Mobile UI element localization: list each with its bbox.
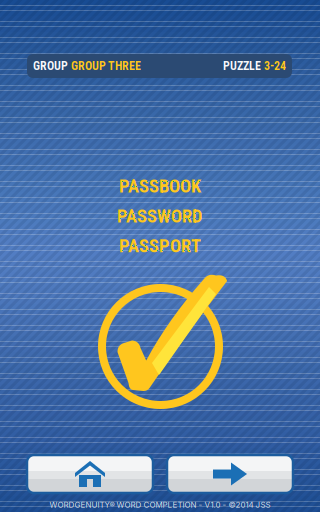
button[interactable]: Home <box>27 455 153 493</box>
staticText: PASSPORT <box>119 235 201 257</box>
staticText: GROUP THREE <box>71 59 141 73</box>
staticText: PASSBOOK <box>119 175 201 197</box>
staticText: PUZZLE <box>223 59 264 73</box>
staticText: GROUP <box>33 59 71 73</box>
staticText: 3-24 <box>264 59 286 73</box>
staticText: PASSWORD <box>117 205 203 227</box>
staticText: WORDGENUITY® WORD COMPLETION - V1.0 - ©2… <box>49 500 270 510</box>
button[interactable]: Next <box>167 455 293 493</box>
